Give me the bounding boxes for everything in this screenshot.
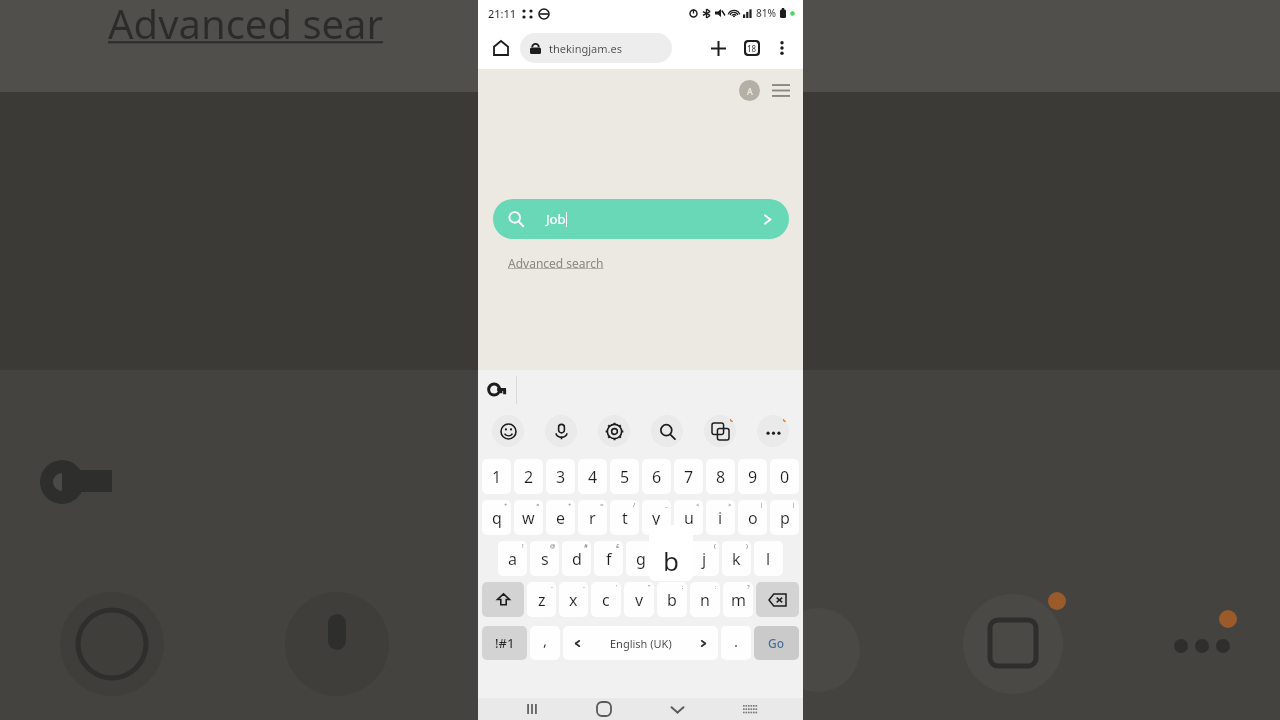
- staticText: 6: [652, 466, 662, 488]
- staticText: z: [538, 589, 546, 611]
- button[interactable]: t: [610, 500, 639, 535]
- button[interactable]: c: [591, 582, 621, 617]
- button[interactable]: Emoji: [492, 415, 524, 447]
- staticText: £: [616, 542, 620, 550]
- button[interactable]: Recents: [514, 698, 550, 720]
- button[interactable]: Translate: [704, 415, 736, 447]
- staticText: 1: [492, 466, 502, 488]
- button[interactable]: x: [559, 582, 588, 617]
- button[interactable]: 1: [482, 459, 511, 494]
- button[interactable]: Menu: [770, 79, 792, 101]
- button[interactable]: 7: [674, 459, 703, 494]
- button[interactable]: Passwords: [478, 370, 516, 408]
- button[interactable]: p: [770, 500, 799, 535]
- button[interactable]: More options: [767, 33, 797, 63]
- staticText: Advanced sear: [108, 0, 384, 50]
- button[interactable]: 6: [642, 459, 671, 494]
- button[interactable]: Shift: [482, 582, 524, 617]
- button[interactable]: z: [527, 582, 556, 617]
- button[interactable]: Hide keyboard: [659, 698, 695, 720]
- button[interactable]: English (UK): [563, 626, 718, 660]
- staticText: h: [668, 548, 678, 570]
- button[interactable]: 8: [706, 459, 735, 494]
- button[interactable]: Advanced search: [508, 255, 604, 271]
- button[interactable]: y: [642, 500, 671, 535]
- button[interactable]: Job: [493, 199, 789, 239]
- button[interactable]: h: [658, 541, 687, 576]
- button[interactable]: f: [594, 541, 623, 576]
- button[interactable]: 4: [578, 459, 607, 494]
- button[interactable]: 9: [738, 459, 767, 494]
- button[interactable]: Settings: [598, 415, 630, 447]
- button[interactable]: Search: [651, 415, 683, 447]
- staticText: -: [551, 583, 553, 591]
- button[interactable]: New tab: [703, 33, 733, 63]
- button[interactable]: r: [578, 500, 607, 535]
- button[interactable]: Voice input: [545, 415, 577, 447]
- staticText: j: [702, 548, 707, 570]
- button[interactable]: d: [562, 541, 591, 576]
- staticText: i: [718, 507, 723, 529]
- staticText: <: [696, 501, 700, 509]
- button[interactable]: 5: [610, 459, 639, 494]
- staticText: b: [667, 589, 677, 611]
- staticText: s: [541, 548, 549, 570]
- button[interactable]: Home: [586, 698, 622, 720]
- staticText: 0: [780, 466, 790, 488]
- staticText: m: [731, 589, 746, 611]
- staticText: x: [569, 589, 578, 611]
- button[interactable]: s: [530, 541, 559, 576]
- button[interactable]: i: [706, 500, 735, 535]
- staticText: w: [522, 507, 535, 529]
- button[interactable]: k: [722, 541, 751, 576]
- button[interactable]: !#1: [482, 626, 527, 660]
- button[interactable]: Go: [754, 626, 799, 660]
- button[interactable]: j: [690, 541, 719, 576]
- button[interactable]: A: [739, 80, 760, 101]
- staticText: ,: [543, 630, 548, 650]
- button[interactable]: w: [514, 500, 543, 535]
- staticText: r: [589, 507, 596, 529]
- staticText: 2: [524, 466, 534, 488]
- button[interactable]: o: [738, 500, 767, 535]
- staticText: e: [556, 507, 566, 529]
- button[interactable]: u: [674, 500, 703, 535]
- button[interactable]: 3: [546, 459, 575, 494]
- button[interactable]: Tabs: 18: [737, 33, 767, 63]
- button[interactable]: thekingjam.es: [520, 33, 672, 63]
- button[interactable]: Keyboard: [731, 698, 767, 720]
- staticText: |: [792, 501, 796, 509]
- button[interactable]: 2: [514, 459, 543, 494]
- staticText: ?: [747, 583, 750, 591]
- staticText: =: [600, 501, 604, 509]
- staticText: 81%: [756, 6, 776, 20]
- staticText: b: [663, 543, 679, 578]
- button[interactable]: .: [721, 626, 751, 660]
- button[interactable]: m: [723, 582, 753, 617]
- staticText: u: [684, 507, 694, 529]
- staticText: ": [648, 583, 651, 591]
- button[interactable]: More: [757, 415, 789, 447]
- staticText: 18: [747, 43, 757, 54]
- button[interactable]: q: [482, 500, 511, 535]
- button[interactable]: v: [624, 582, 654, 617]
- button[interactable]: l: [754, 541, 783, 576]
- staticText: 7: [684, 466, 694, 488]
- button[interactable]: Home: [488, 35, 514, 61]
- staticText: 9: [748, 466, 758, 488]
- staticText: k: [732, 548, 741, 570]
- staticText: l: [766, 548, 771, 570]
- staticText: ): [746, 542, 748, 550]
- button[interactable]: Backspace: [756, 582, 799, 617]
- staticText: thekingjam.es: [549, 41, 622, 56]
- button[interactable]: g: [626, 541, 655, 576]
- button[interactable]: e: [546, 500, 575, 535]
- button[interactable]: b: [657, 582, 687, 617]
- button[interactable]: ,: [530, 626, 560, 660]
- button[interactable]: 0: [770, 459, 799, 494]
- staticText: n: [700, 589, 710, 611]
- button[interactable]: n: [690, 582, 720, 617]
- button[interactable]: a: [498, 541, 527, 576]
